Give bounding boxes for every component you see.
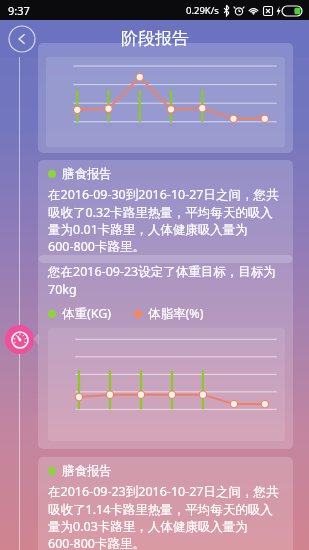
staticText: 膳食报告: [62, 463, 112, 479]
staticText: 在2016-09-30到2016-10-27日之间，您共吸收了0.32卡路里热量…: [48, 186, 285, 255]
staticText: 9:37: [8, 3, 30, 18]
button[interactable]: [38, 43, 293, 153]
button[interactable]: Back: [8, 25, 36, 53]
staticText: 膳食报告: [62, 166, 112, 182]
staticText: 体重(KG): [62, 305, 112, 322]
button[interactable]: Health metric: [5, 325, 34, 354]
staticText: 0.29K/s: [186, 4, 219, 17]
button[interactable]: 膳食报告: [38, 160, 293, 263]
staticText: 体脂率(%): [148, 305, 204, 322]
staticText: 在2016-09-23到2016-10-27日之间，您共吸收了1.14卡路里热量…: [48, 483, 285, 550]
button[interactable]: 您在2016-09-23设定了体重目标，目标为70kg: [38, 255, 293, 449]
button[interactable]: 膳食报告: [38, 457, 293, 550]
staticText: 阶段报告: [121, 28, 189, 49]
staticText: 您在2016-09-23设定了体重目标，目标为70kg: [48, 263, 285, 298]
